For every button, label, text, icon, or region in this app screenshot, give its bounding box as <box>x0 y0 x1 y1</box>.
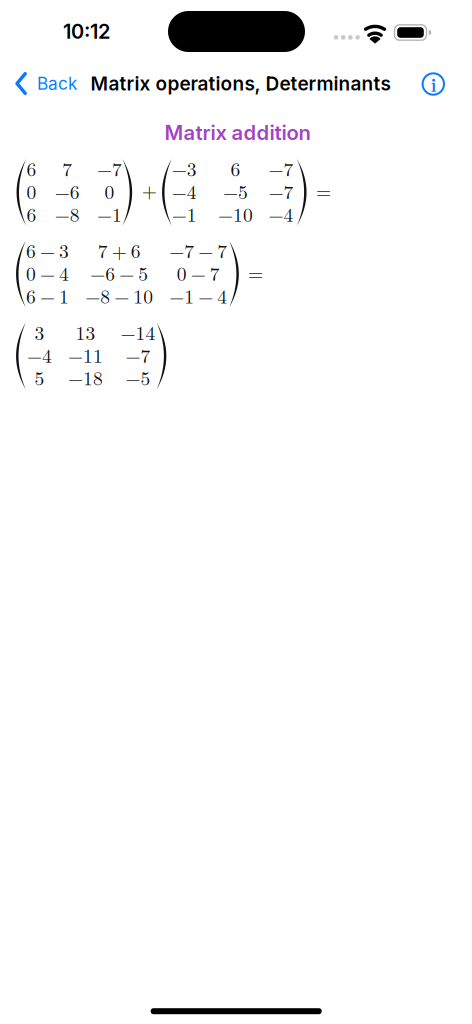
staticText: −6 <box>55 177 80 205</box>
staticText: −1 − 4 <box>169 281 227 309</box>
staticText: 6 <box>230 154 240 182</box>
staticText: −4 <box>268 200 293 227</box>
staticText: i <box>430 70 436 97</box>
staticText: Back <box>37 73 77 94</box>
staticText: + <box>142 175 157 203</box>
staticText: −5 <box>223 177 248 205</box>
staticText: −8 − 10 <box>85 281 153 309</box>
staticText: Matrix operations, Determinants <box>90 72 390 95</box>
staticText: −1 <box>97 200 122 227</box>
staticText: = <box>248 258 263 286</box>
staticText: −11 <box>68 341 103 368</box>
staticText: 7 + 6 <box>98 236 141 264</box>
staticText: 6 − 1 <box>26 281 69 309</box>
staticText: 3 <box>34 318 44 346</box>
staticText: 6 <box>26 200 36 227</box>
staticText: 6 − 3 <box>26 236 69 264</box>
staticText: −4 <box>172 177 197 205</box>
staticText: −3 <box>172 154 197 182</box>
staticText: 5 <box>34 363 44 391</box>
staticText: 0 − 4 <box>26 259 69 286</box>
staticText: Matrix addition <box>164 120 310 145</box>
staticText: −7 <box>97 154 122 182</box>
staticText: −14 <box>120 318 155 346</box>
staticText: 10:12 <box>63 19 110 44</box>
staticText: −1 <box>172 200 197 227</box>
staticText: 0 <box>104 177 114 205</box>
staticText: −18 <box>68 363 103 391</box>
button[interactable]: Info <box>422 72 445 95</box>
staticText: 7 <box>62 154 72 182</box>
staticText: −5 <box>125 363 150 391</box>
staticText: −7 <box>268 154 293 182</box>
staticText: −8 <box>55 200 80 227</box>
staticText: = <box>316 176 331 204</box>
staticText: −6 − 5 <box>90 259 148 286</box>
staticText: 6 <box>26 154 36 182</box>
button[interactable]: Back <box>13 68 81 98</box>
staticText: −7 <box>125 341 150 368</box>
staticText: 0 − 7 <box>177 259 220 286</box>
staticText: −10 <box>218 200 253 227</box>
staticText: −7 <box>268 177 293 205</box>
staticText: 13 <box>75 318 95 346</box>
staticText: 0 <box>26 177 36 205</box>
staticText: −4 <box>27 341 52 368</box>
staticText: −7 − 7 <box>169 236 227 264</box>
